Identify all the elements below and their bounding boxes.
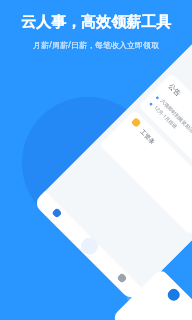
staticText: 云人事，高效领薪工具	[21, 13, 171, 32]
staticText: 六项即时到账奖励活动	[159, 98, 192, 137]
staticText: 月薪/周薪/日薪，每笔收入立即领取	[33, 39, 159, 50]
staticText: 公告	[166, 81, 183, 98]
staticText: 工资条	[138, 127, 157, 146]
staticText: 12月-1月排班	[152, 104, 179, 131]
